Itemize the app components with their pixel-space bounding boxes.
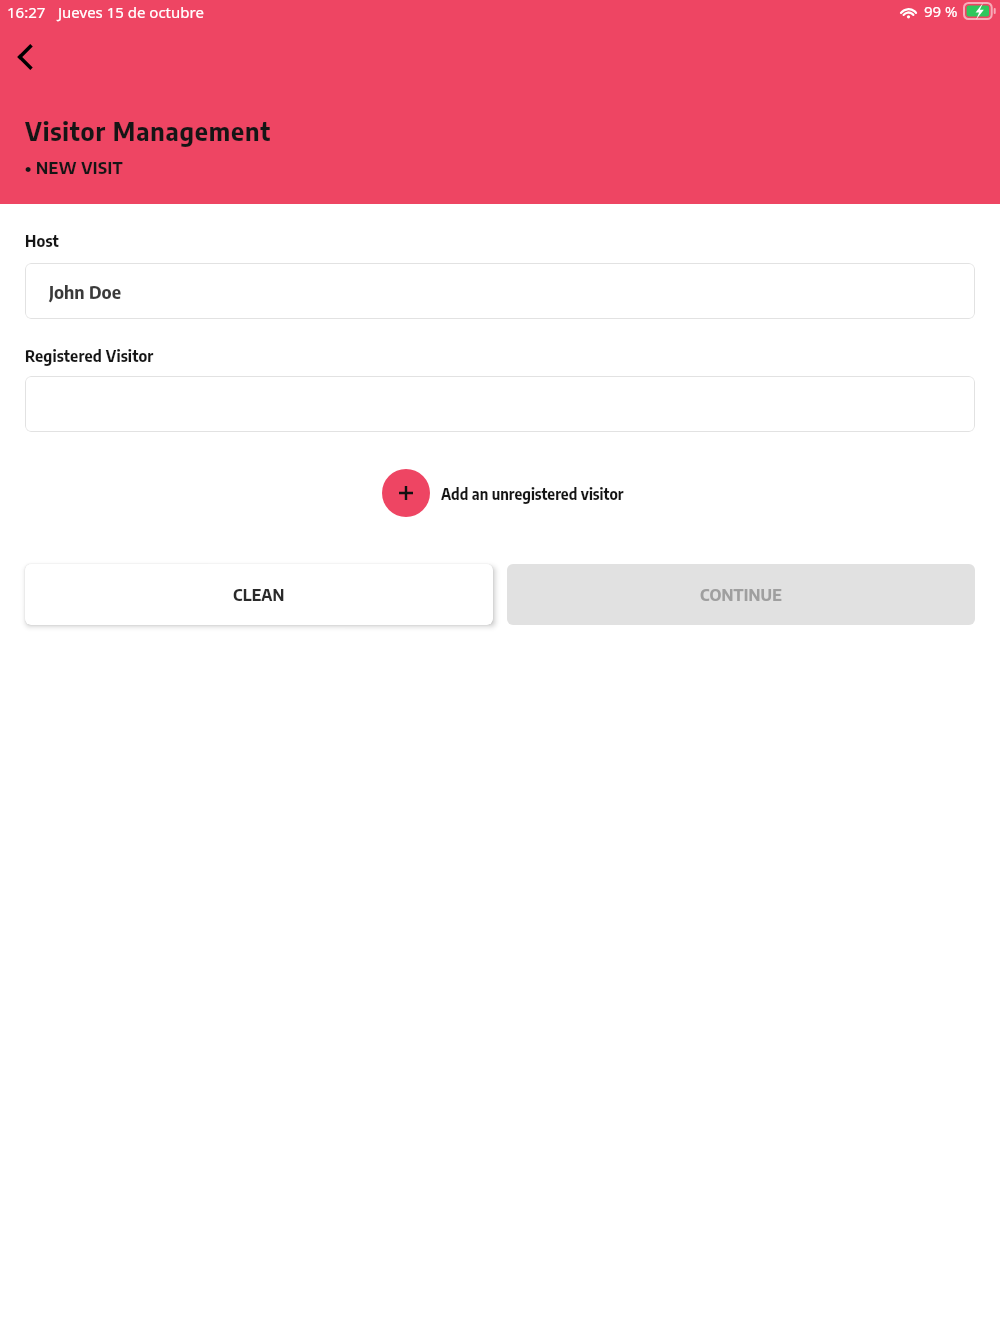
button[interactable]: Back [4,35,48,79]
staticText: CONTINUE [700,584,783,605]
staticText: • NEW VISIT [25,157,124,178]
button[interactable]: CONTINUE [507,564,975,625]
staticText: Jueves 15 de octubre [58,2,204,22]
staticText: 99 % [924,1,958,21]
staticText: Host [25,231,59,251]
staticText: Add an unregistered visitor [441,484,624,503]
staticText: Visitor Management [25,115,272,147]
button[interactable] [25,376,975,432]
staticText: CLEAN [233,584,285,605]
button[interactable]: Add an unregistered visitor [382,469,624,517]
staticText: Registered Visitor [25,346,154,366]
button[interactable]: CLEAN [25,564,493,625]
staticText: 16:27 [7,2,46,22]
button[interactable]: John Doe [25,263,975,319]
other: Battery charging [963,2,996,20]
staticText: John Doe [49,280,122,303]
other: Wi-Fi [899,4,918,19]
